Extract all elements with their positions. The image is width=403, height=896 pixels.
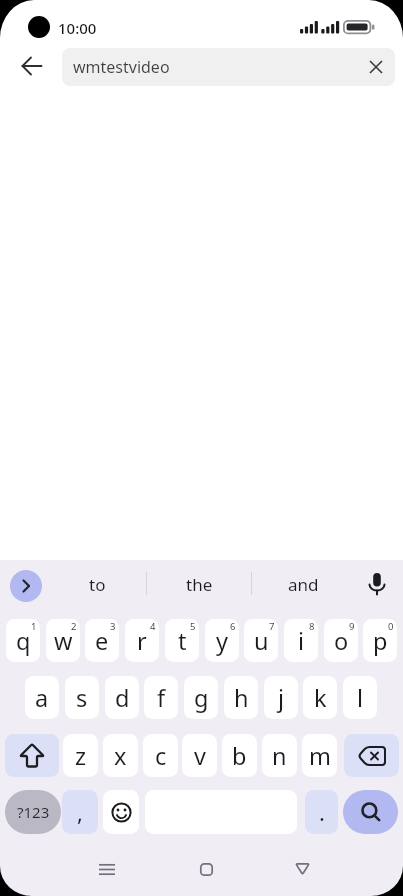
button[interactable]: z bbox=[63, 734, 98, 777]
button[interactable]: i bbox=[284, 619, 318, 662]
button[interactable]: the bbox=[150, 566, 248, 602]
staticText: z bbox=[75, 740, 87, 772]
staticText: r bbox=[137, 625, 147, 657]
button[interactable]: r bbox=[125, 619, 159, 662]
button[interactable]: p bbox=[363, 619, 397, 662]
staticText: y bbox=[216, 625, 228, 657]
button[interactable] bbox=[282, 849, 322, 889]
button[interactable] bbox=[368, 59, 384, 75]
staticText: 9 bbox=[349, 620, 355, 633]
button[interactable] bbox=[186, 849, 226, 889]
staticText: b bbox=[232, 740, 247, 772]
staticText: q bbox=[16, 625, 31, 657]
staticText: 5 bbox=[190, 620, 196, 633]
button[interactable]: f bbox=[144, 676, 178, 719]
staticText: 0 bbox=[388, 620, 394, 633]
button[interactable] bbox=[10, 570, 42, 602]
staticText: o bbox=[334, 625, 349, 657]
button[interactable]: b bbox=[222, 734, 257, 777]
staticText: 6 bbox=[230, 620, 236, 633]
button[interactable]: ?123 bbox=[5, 790, 61, 834]
staticText: ?123 bbox=[17, 802, 50, 822]
button[interactable]: u bbox=[244, 619, 278, 662]
button[interactable]: to bbox=[48, 566, 146, 602]
button[interactable]: l bbox=[343, 676, 377, 719]
button[interactable]: g bbox=[184, 676, 218, 719]
button[interactable]: . bbox=[305, 790, 338, 834]
button[interactable]: c bbox=[143, 734, 178, 777]
button[interactable]: o bbox=[324, 619, 358, 662]
button[interactable]: h bbox=[224, 676, 258, 719]
staticText: w bbox=[54, 625, 73, 657]
staticText: j bbox=[278, 682, 285, 714]
button[interactable]: k bbox=[303, 676, 337, 719]
button[interactable]: x bbox=[103, 734, 138, 777]
button[interactable]: q bbox=[6, 619, 40, 662]
staticText: s bbox=[76, 682, 88, 714]
staticText: . bbox=[319, 797, 325, 827]
button[interactable] bbox=[12, 46, 52, 86]
button[interactable]: y bbox=[205, 619, 239, 662]
staticText: n bbox=[272, 740, 287, 772]
staticText: 1 bbox=[31, 620, 37, 633]
staticText: 10:00 bbox=[58, 18, 97, 38]
staticText: x bbox=[114, 740, 127, 772]
button[interactable] bbox=[87, 849, 127, 889]
staticText: k bbox=[314, 682, 327, 714]
button[interactable]: d bbox=[105, 676, 139, 719]
button[interactable]: e bbox=[85, 619, 119, 662]
staticText: e bbox=[95, 625, 109, 657]
staticText: u bbox=[254, 625, 269, 657]
staticText: , bbox=[77, 797, 83, 827]
staticText: a bbox=[35, 682, 49, 714]
button[interactable]: t bbox=[165, 619, 199, 662]
button[interactable] bbox=[343, 790, 398, 834]
staticText: t bbox=[178, 625, 187, 657]
button[interactable]: v bbox=[182, 734, 217, 777]
staticText: wmtestvideo bbox=[73, 56, 170, 78]
button[interactable]: j bbox=[264, 676, 298, 719]
button[interactable]: wmtestvideo bbox=[62, 48, 395, 86]
staticText: the bbox=[186, 573, 213, 596]
button[interactable]: s bbox=[65, 676, 99, 719]
staticText: 4 bbox=[150, 620, 156, 633]
staticText: f bbox=[157, 682, 166, 714]
button[interactable]: n bbox=[262, 734, 297, 777]
staticText: d bbox=[115, 682, 130, 714]
staticText: m bbox=[309, 740, 331, 772]
staticText: 7 bbox=[269, 620, 275, 633]
staticText: p bbox=[373, 625, 388, 657]
button[interactable]: and bbox=[254, 566, 352, 602]
staticText: 8 bbox=[309, 620, 315, 633]
button[interactable]: , bbox=[62, 790, 98, 834]
button[interactable]: a bbox=[25, 676, 59, 719]
button[interactable] bbox=[344, 734, 399, 777]
button[interactable]: m bbox=[302, 734, 337, 777]
staticText: to bbox=[89, 573, 106, 596]
button[interactable] bbox=[363, 570, 391, 598]
button[interactable] bbox=[5, 734, 59, 777]
staticText: 2 bbox=[71, 620, 77, 633]
staticText: and bbox=[288, 573, 319, 596]
staticText: g bbox=[194, 682, 209, 714]
button[interactable] bbox=[103, 790, 139, 834]
staticText: 3 bbox=[110, 620, 116, 633]
staticText: v bbox=[194, 740, 206, 772]
staticText: c bbox=[155, 740, 167, 772]
staticText: h bbox=[234, 682, 249, 714]
staticText: l bbox=[357, 682, 364, 714]
button[interactable]: w bbox=[46, 619, 80, 662]
staticText: i bbox=[298, 625, 305, 657]
